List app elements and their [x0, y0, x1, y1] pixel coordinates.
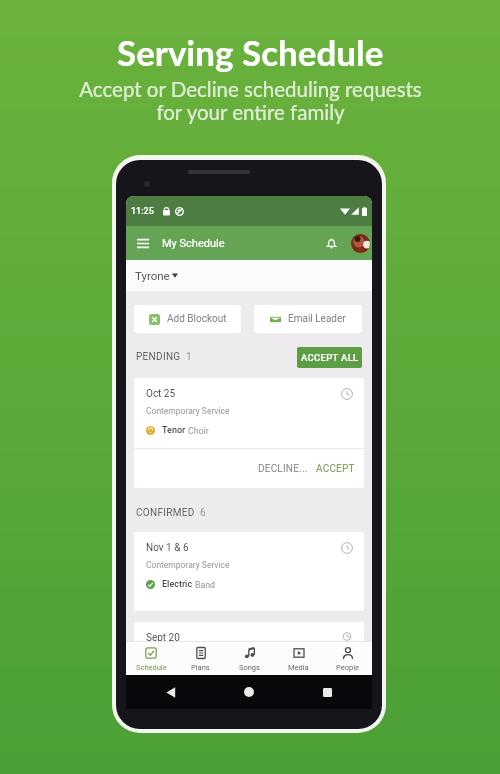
button[interactable]: Open navigation menu: [132, 232, 154, 254]
button[interactable]: Tyrone: [126, 260, 372, 291]
staticText: Tyrone: [135, 269, 170, 282]
button[interactable]: Home: [238, 681, 260, 703]
button[interactable]: Nov 1 & 6: [134, 532, 364, 611]
staticText: Contemporary Service: [146, 406, 230, 416]
staticText: Nov 1 & 6: [146, 542, 189, 554]
staticText: Electric: [162, 579, 193, 590]
staticText: CONFIRMED: [136, 507, 195, 519]
staticText: Contemporary Service: [146, 560, 230, 570]
staticText: My Schedule: [162, 237, 225, 250]
staticText: DECLINE...: [258, 463, 308, 475]
button[interactable]: Recent apps: [316, 681, 338, 703]
button[interactable]: Sept 20: [134, 622, 364, 641]
staticText: Tenor: [162, 425, 186, 436]
staticText: PENDING: [136, 351, 181, 363]
button[interactable]: Oct 25: [134, 378, 364, 488]
staticText: 11:25: [131, 206, 154, 217]
button[interactable]: Email Leader: [254, 305, 362, 333]
staticText: Accept or Decline scheduling requests fo…: [79, 77, 422, 125]
staticText: Choir: [188, 426, 209, 436]
button[interactable]: Plans: [176, 641, 225, 675]
staticText: Plans: [191, 663, 210, 672]
staticText: Serving Schedule: [117, 31, 384, 73]
button[interactable]: Back: [160, 681, 182, 703]
button[interactable]: DECLINE...: [255, 456, 311, 482]
button[interactable]: Songs: [225, 641, 274, 675]
staticText: ACCEPT ALL: [301, 352, 359, 363]
button[interactable]: Schedule: [126, 641, 176, 675]
staticText: 1: [186, 351, 192, 363]
staticText: People: [336, 663, 359, 672]
button[interactable]: Add Blockout: [134, 305, 241, 333]
staticText: Sept 20: [146, 632, 180, 641]
button[interactable]: Profile: [351, 234, 370, 253]
button[interactable]: Media: [274, 641, 323, 675]
staticText: Oct 25: [146, 388, 176, 400]
button[interactable]: ACCEPT: [313, 456, 358, 482]
staticText: Media: [288, 663, 309, 672]
staticText: Songs: [239, 663, 260, 672]
staticText: ACCEPT: [316, 463, 355, 475]
staticText: Band: [195, 580, 216, 590]
staticText: 6: [200, 507, 206, 519]
staticText: Email Leader: [288, 313, 346, 325]
button[interactable]: People: [323, 641, 372, 675]
staticText: Add Blockout: [167, 313, 227, 325]
button[interactable]: ACCEPT ALL: [297, 347, 362, 368]
button[interactable]: Notifications: [321, 233, 341, 253]
staticText: Schedule: [136, 663, 167, 672]
